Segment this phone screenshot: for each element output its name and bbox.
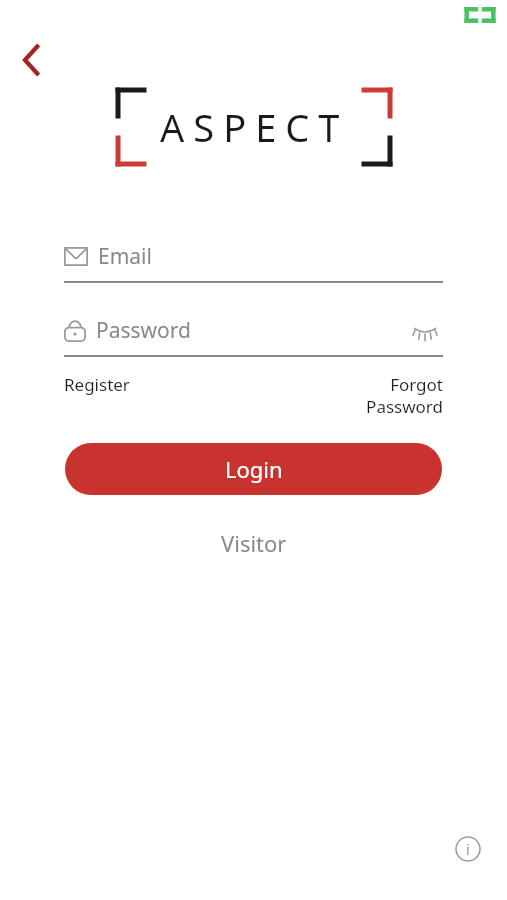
staticText: Password <box>96 316 191 345</box>
button[interactable]: Back <box>8 36 56 84</box>
button[interactable]: Register <box>64 373 130 396</box>
other: Status indicator <box>462 4 498 26</box>
button[interactable]: Forgot Password <box>365 373 443 418</box>
staticText: i <box>466 840 470 859</box>
staticText: ASPECT <box>160 101 349 153</box>
staticText: Register <box>64 373 130 396</box>
button[interactable]: Password <box>64 310 443 350</box>
button[interactable]: Information <box>453 834 483 864</box>
staticText: Email <box>98 242 152 271</box>
button[interactable]: Show password <box>407 312 443 348</box>
staticText: Forgot Password <box>365 373 443 418</box>
button[interactable]: Visitor <box>203 520 305 566</box>
button[interactable]: Email <box>64 236 443 276</box>
staticText: Visitor <box>221 528 287 558</box>
button[interactable]: Login <box>65 443 442 495</box>
staticText: Login <box>225 454 283 484</box>
